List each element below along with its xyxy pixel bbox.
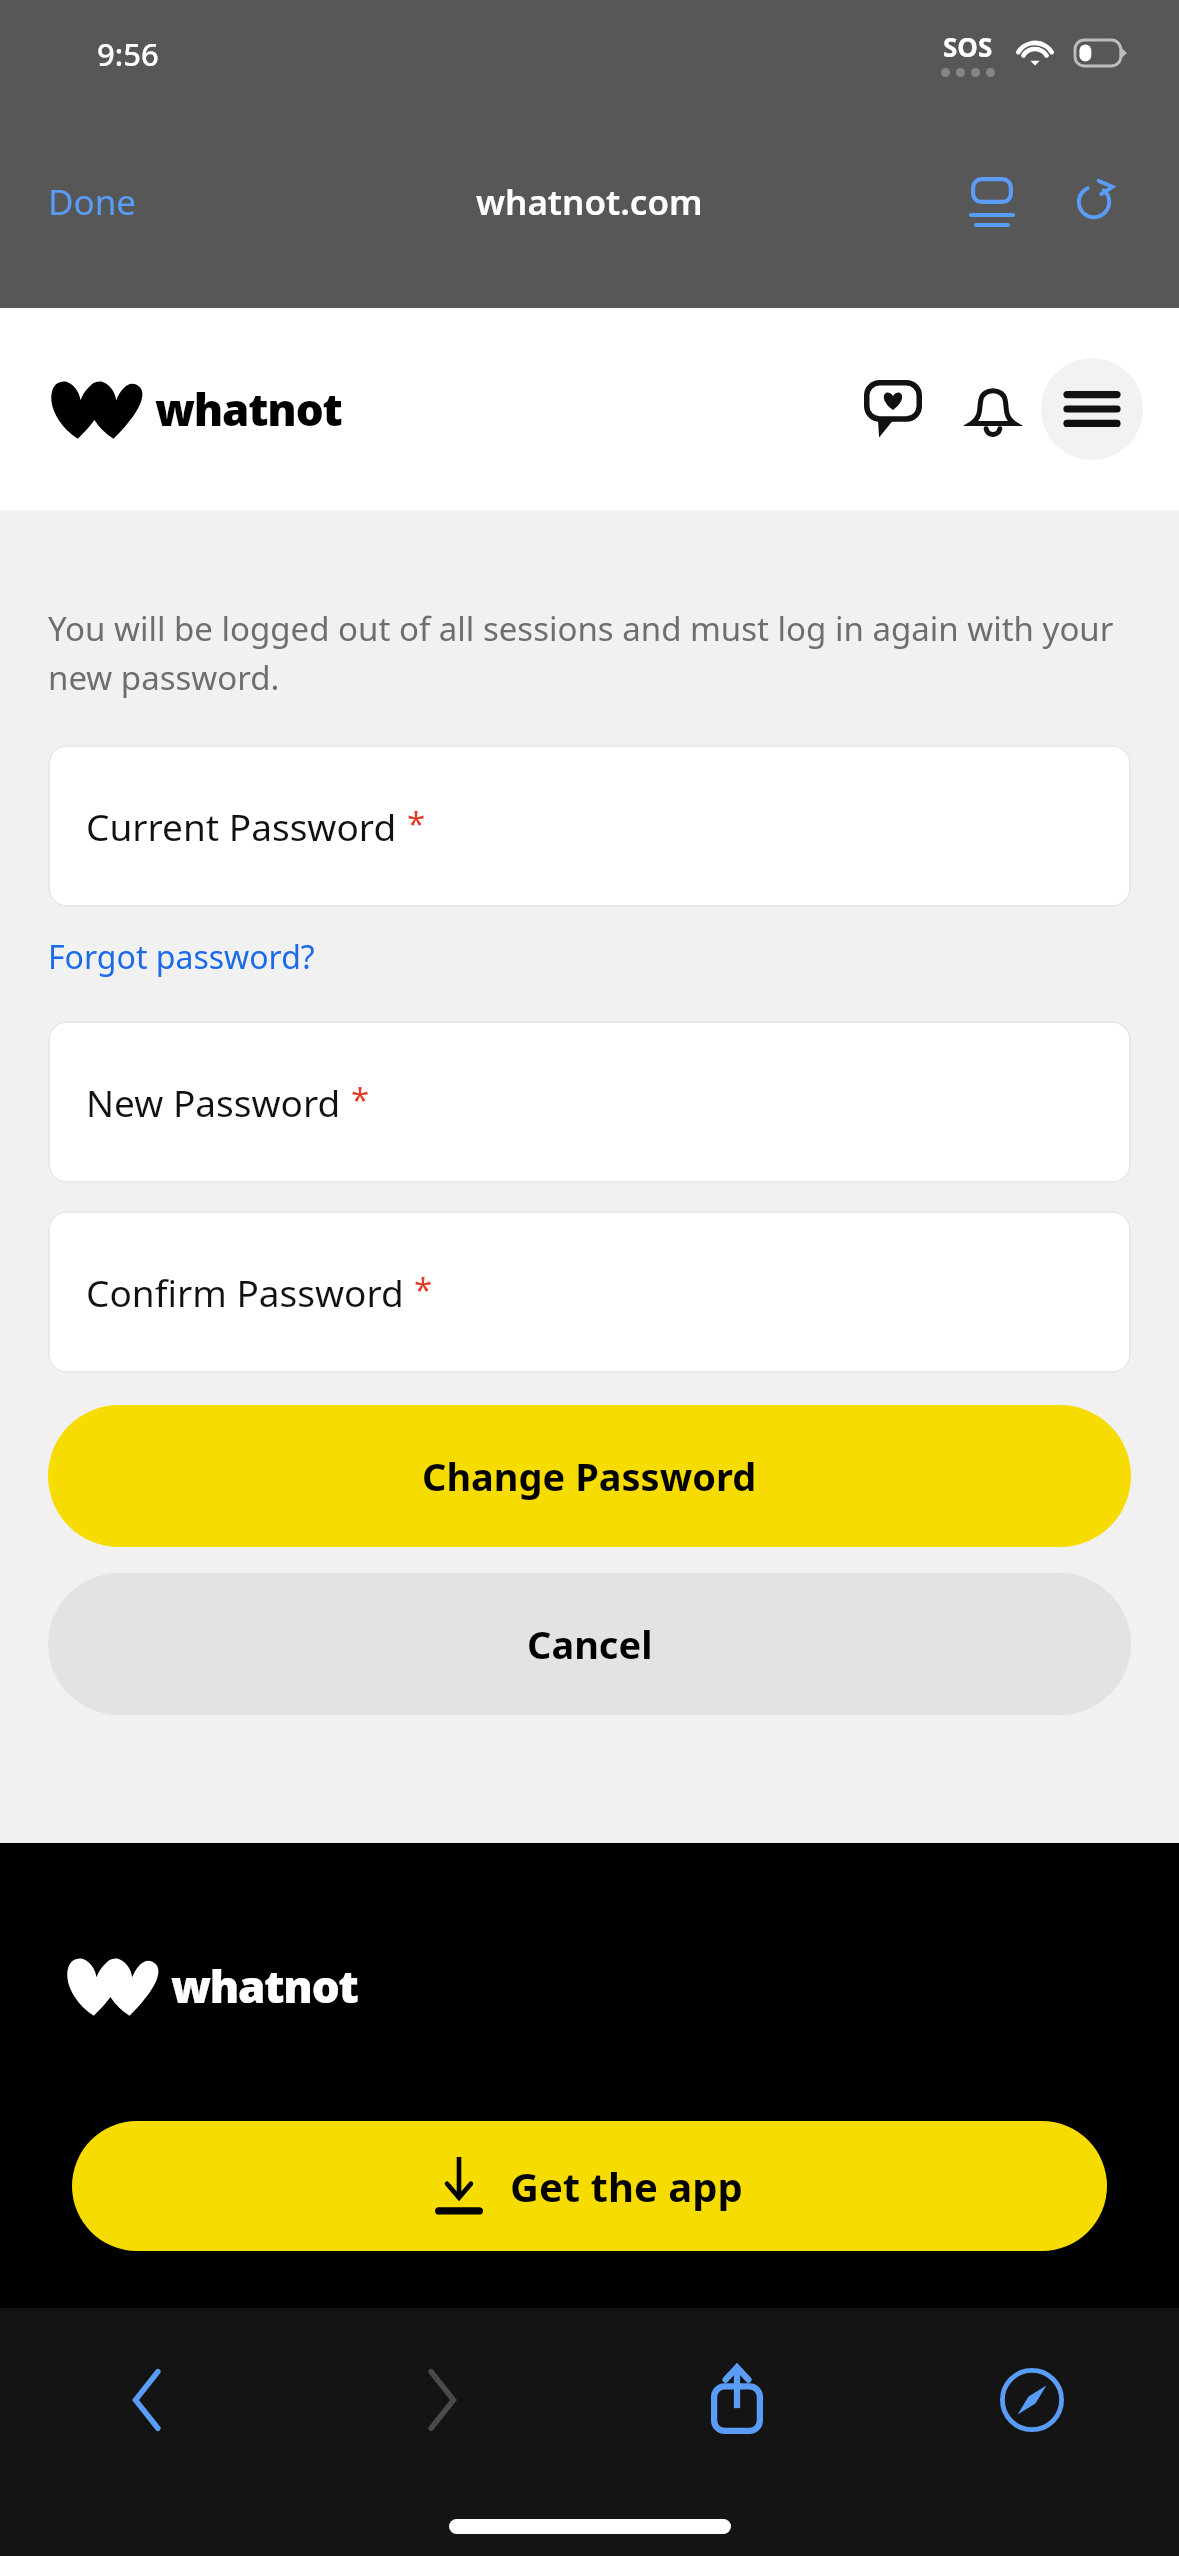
staticText: * (407, 801, 426, 846)
button[interactable]: Cancel (48, 1573, 1131, 1715)
staticText: Change Password (422, 1450, 757, 1502)
button[interactable]: Confirm Password (48, 1211, 1131, 1373)
button[interactable]: Share (589, 2338, 884, 2462)
staticText: SOS (943, 29, 993, 64)
staticText: You will be logged out of all sessions a… (48, 606, 1131, 699)
button[interactable]: Reload (1051, 159, 1137, 245)
button[interactable]: New Password (48, 1021, 1131, 1183)
staticText: Get the app (510, 2159, 743, 2213)
staticText: whatnot (171, 1956, 358, 2016)
staticText: Cancel (527, 1618, 653, 1670)
button[interactable]: Current Password (48, 745, 1131, 907)
staticText: New Password (86, 1077, 341, 1127)
staticText: * (351, 1077, 370, 1122)
button[interactable]: Change Password (48, 1405, 1131, 1547)
staticText: * (414, 1267, 433, 1312)
button[interactable]: Get the app (72, 2121, 1107, 2251)
button[interactable]: Messages (849, 365, 937, 453)
staticText: Current Password (86, 801, 397, 851)
button[interactable]: Tabs (884, 2338, 1179, 2462)
staticText: Confirm Password (86, 1267, 404, 1317)
staticText: Forgot password? (48, 935, 315, 979)
staticText: whatnot.com (476, 178, 703, 226)
button[interactable]: Forward (294, 2338, 589, 2462)
button[interactable]: Forgot password? (48, 935, 315, 979)
button[interactable]: Menu (1041, 358, 1143, 460)
button[interactable]: Reader view (949, 159, 1035, 245)
button[interactable]: Back (0, 2338, 294, 2462)
button[interactable]: Notifications (949, 365, 1037, 453)
staticText: Done (48, 178, 137, 226)
staticText: whatnot (155, 379, 342, 439)
staticText: 9:56 (97, 33, 159, 75)
button[interactable]: Done (0, 160, 185, 244)
